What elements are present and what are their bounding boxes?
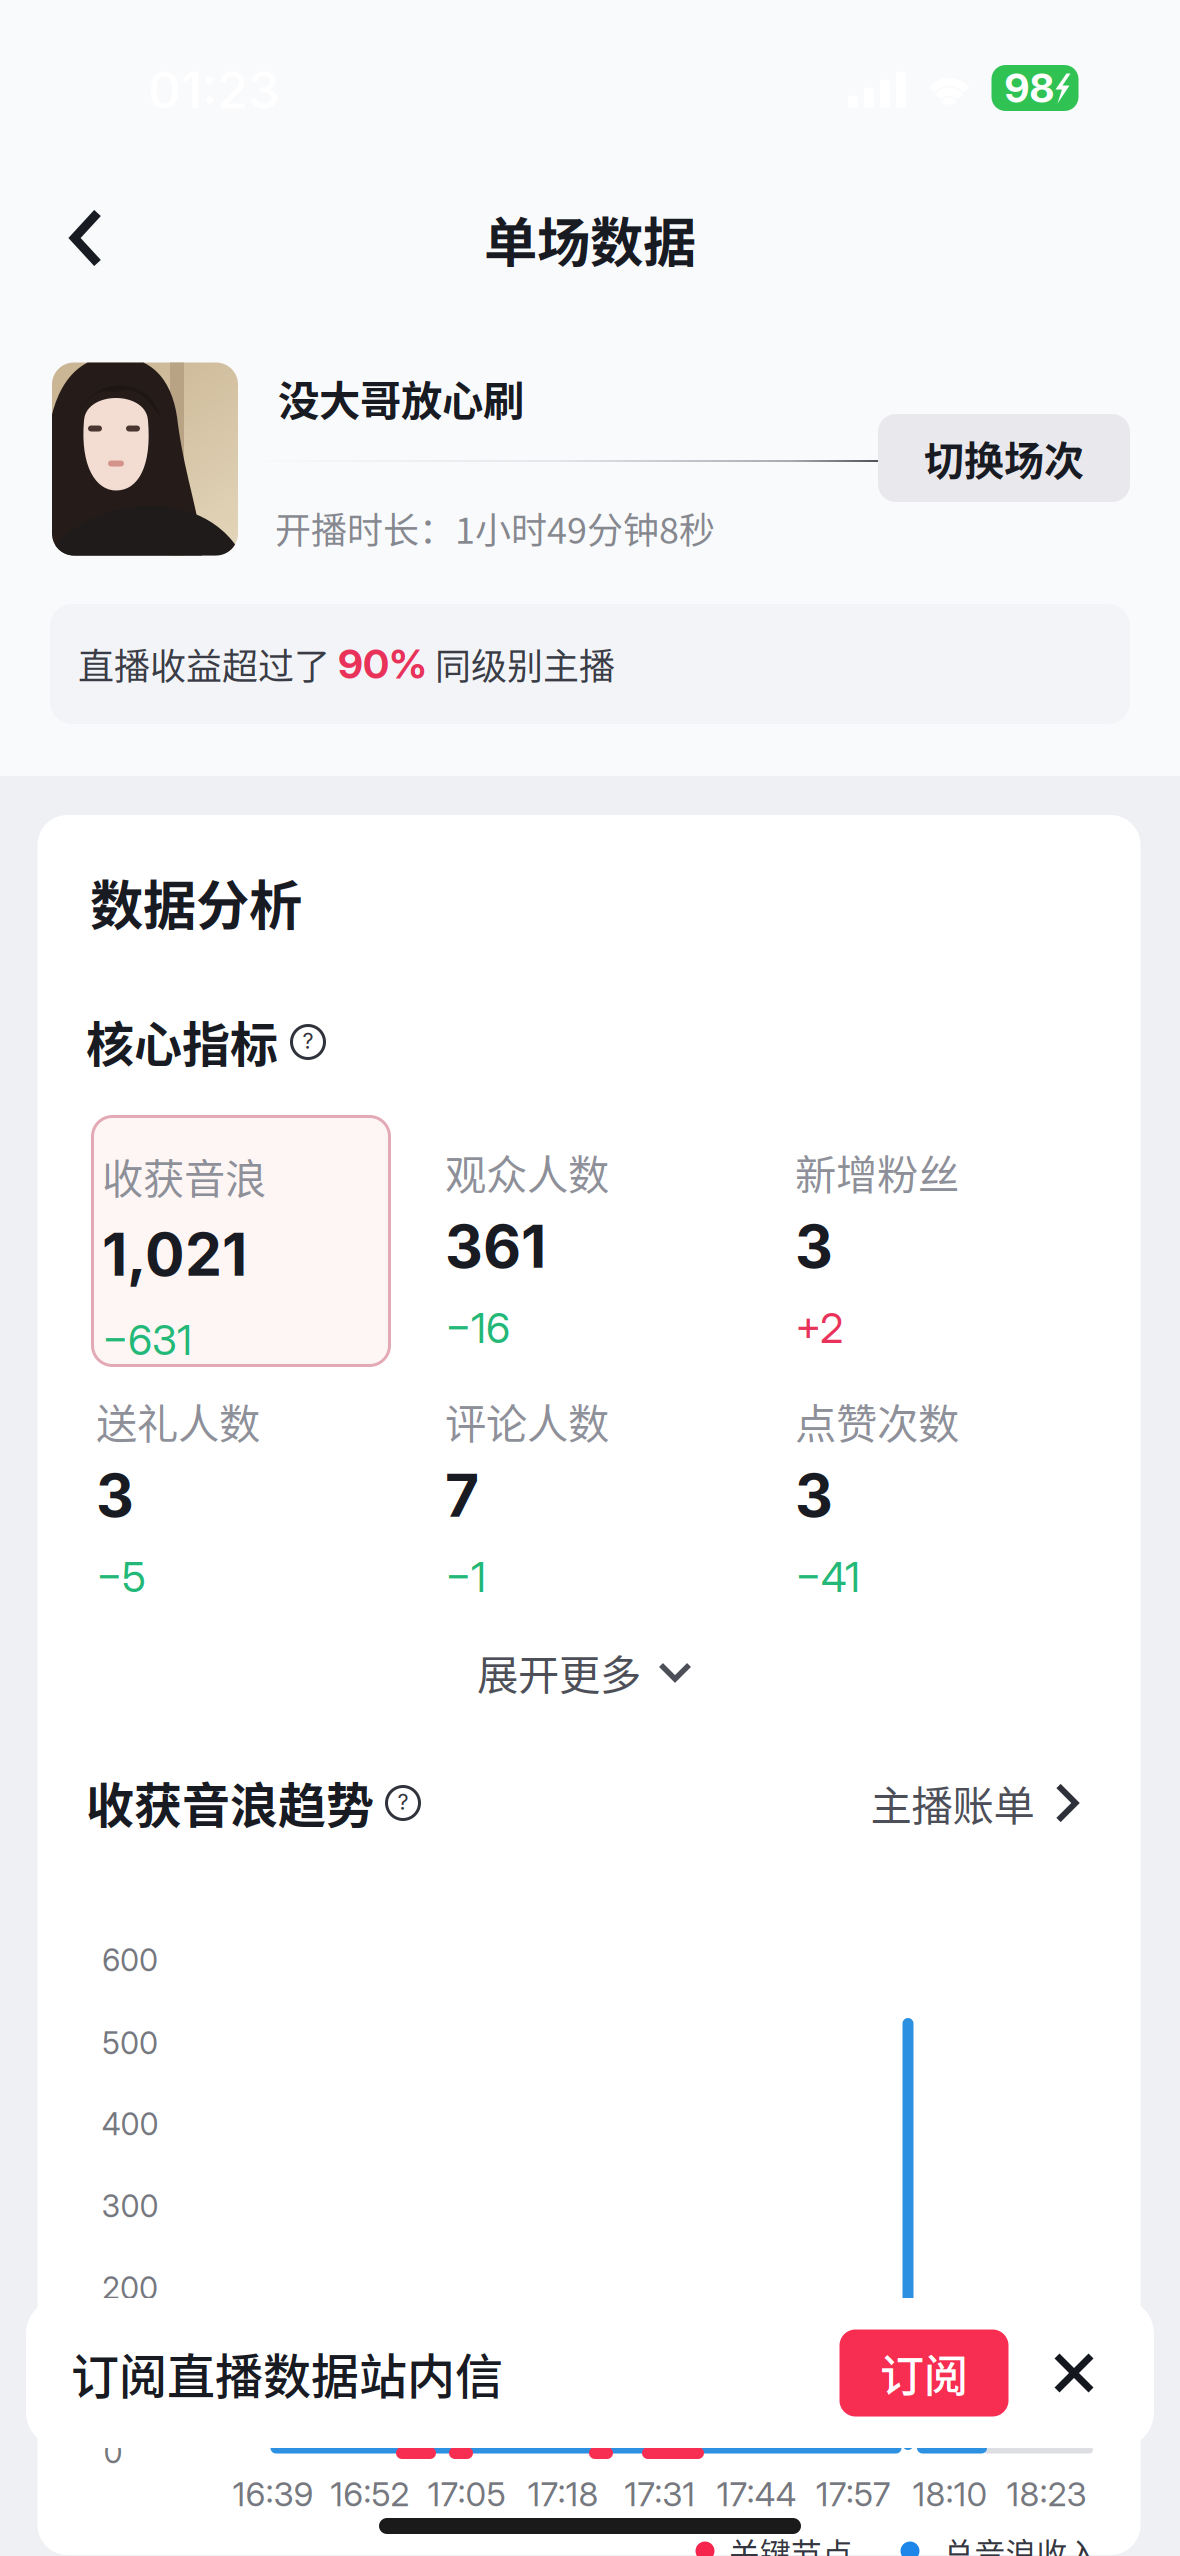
staticText: 切换场次 [924, 429, 1084, 487]
button[interactable]: 返回 [26, 178, 146, 298]
staticText: 展开更多 [477, 1642, 641, 1702]
staticText: 订阅直播数据站内信 [71, 2338, 503, 2408]
staticText: 关键节点 [729, 2530, 853, 2556]
staticText: 单场数据 [484, 200, 696, 278]
staticText: 订阅 [880, 2341, 968, 2405]
staticText: 16:39 [232, 2474, 313, 2514]
staticText: −16 [445, 1303, 510, 1353]
staticText: 500 [102, 2024, 158, 2061]
staticText: 观众人数 [445, 1142, 609, 1202]
button[interactable]: 切换场次 [878, 414, 1130, 502]
button[interactable]: 主播账单 [856, 1759, 1093, 1847]
staticText: 17:18 [528, 2474, 599, 2514]
staticText: 16:52 [330, 2474, 409, 2514]
staticText: −5 [96, 1552, 146, 1602]
staticText: 评论人数 [445, 1391, 609, 1451]
staticText: 主播账单 [870, 1773, 1034, 1833]
staticText: 17:31 [624, 2474, 695, 2514]
staticText: −1 [445, 1552, 486, 1602]
staticText: 361 [445, 1211, 546, 1282]
staticText: 0 [103, 2433, 122, 2470]
button[interactable]: 展开更多 [453, 1628, 717, 1716]
staticText: 17:05 [427, 2474, 505, 2514]
staticText: 总音浪收入 [943, 2530, 1098, 2556]
button[interactable]: 订阅 [839, 2329, 1008, 2416]
staticText: 点赞次数 [795, 1391, 959, 1451]
staticText: 新增粉丝 [795, 1142, 959, 1202]
staticText: 没大哥放心刷 [278, 368, 524, 428]
staticText: 400 [101, 2105, 158, 2142]
staticText: 收获音浪 [102, 1146, 266, 1206]
staticText: 300 [101, 2187, 158, 2224]
staticText: −631 [102, 1315, 192, 1365]
staticText: 90% [338, 640, 427, 688]
staticText: 18:10 [912, 2474, 987, 2514]
staticText: 数据分析 [90, 863, 302, 941]
staticText: 同级别主播 [427, 638, 615, 690]
staticText: 送礼人数 [96, 1391, 260, 1451]
staticText: 17:44 [716, 2474, 796, 2514]
staticText: 100 [105, 2351, 155, 2388]
staticText: 直播收益超过了 [78, 638, 338, 690]
staticText: +2 [795, 1303, 843, 1353]
staticText: 核心指标 [86, 1006, 278, 1076]
staticText: 开播时长：1小时49分钟8秒 [275, 502, 715, 554]
staticText: 98 [1004, 64, 1054, 112]
staticText: ? [302, 1028, 313, 1054]
staticText: 200 [102, 2269, 158, 2306]
staticText: 3 [96, 1460, 134, 1531]
staticText: 收获音浪趋势 [86, 1767, 374, 1837]
staticText: 1,021 [102, 1219, 247, 1290]
staticText: 3 [795, 1460, 833, 1531]
staticText: 7 [445, 1460, 479, 1531]
staticText: ? [397, 1789, 408, 1815]
staticText: 18:23 [1007, 2474, 1087, 2514]
staticText: 17:57 [816, 2474, 891, 2514]
staticText: 3 [795, 1211, 833, 1282]
button[interactable]: 关闭 [1042, 2341, 1106, 2405]
staticText: 600 [102, 1941, 158, 1978]
staticText: −41 [795, 1552, 860, 1602]
